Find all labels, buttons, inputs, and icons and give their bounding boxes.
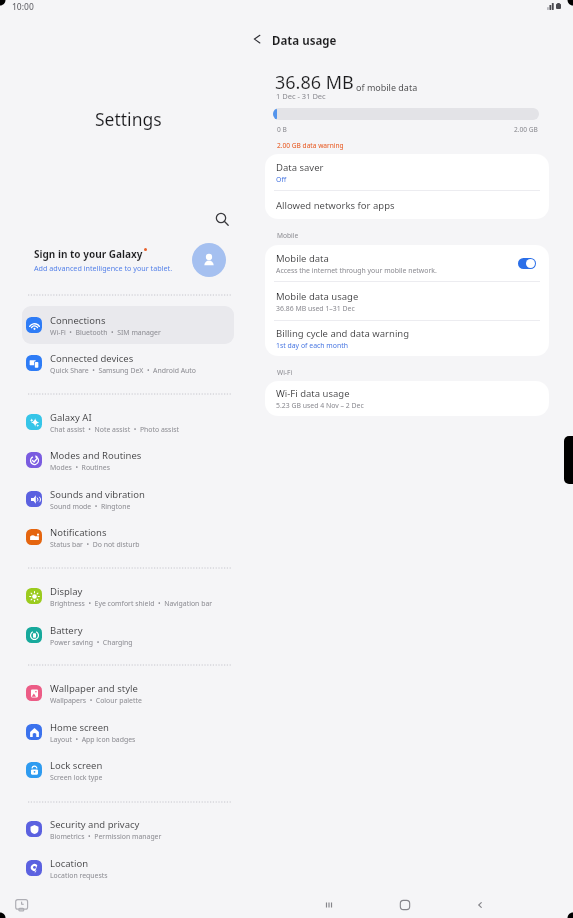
staticText: Data saver bbox=[276, 161, 324, 174]
button[interactable]: Search bbox=[215, 212, 230, 227]
staticText: 10:00 bbox=[12, 1, 34, 13]
staticText: Sound mode • Ringtone bbox=[50, 502, 131, 511]
staticText: Sounds and vibration bbox=[50, 488, 145, 501]
staticText: Modes • Routines bbox=[50, 463, 111, 472]
button[interactable]: Back bbox=[246, 28, 268, 50]
button[interactable]: Battery bbox=[22, 616, 234, 654]
staticText: Display bbox=[50, 585, 83, 598]
staticText: 1 Dec - 31 Dec bbox=[276, 91, 326, 101]
staticText: Wi-Fi bbox=[277, 368, 293, 377]
button[interactable]: Edge panel bbox=[564, 436, 573, 484]
staticText: Mobile data usage bbox=[276, 290, 359, 303]
staticText: Brightness • Eye comfort shield • Naviga… bbox=[50, 599, 213, 608]
staticText: Access the internet through your mobile … bbox=[276, 266, 437, 275]
button[interactable]: Allowed networks for apps bbox=[265, 191, 549, 219]
staticText: Location bbox=[50, 857, 89, 870]
staticText: Data usage bbox=[272, 33, 337, 49]
staticText: Galaxy AI bbox=[50, 411, 92, 424]
button[interactable]: Lock screen bbox=[22, 751, 234, 789]
staticText: Sign in to your Galaxy bbox=[34, 247, 143, 261]
staticText: Modes and Routines bbox=[50, 449, 142, 462]
staticText: Connected devices bbox=[50, 352, 134, 365]
staticText: 5.23 GB used 4 Nov – 2 Dec bbox=[276, 401, 364, 410]
staticText: 0 B bbox=[277, 125, 287, 134]
button[interactable]: Galaxy AI bbox=[22, 403, 234, 441]
staticText: Add advanced intelligence to your tablet… bbox=[34, 263, 173, 273]
staticText: Chat assist • Note assist • Photo assist bbox=[50, 425, 179, 434]
button[interactable]: Home bbox=[396, 896, 414, 914]
button[interactable]: Sounds and vibration bbox=[22, 480, 234, 518]
staticText: 2.00 GB data warning bbox=[277, 141, 344, 150]
staticText: Layout • App icon badges bbox=[50, 735, 136, 744]
button[interactable]: Recent apps bbox=[15, 898, 29, 911]
button[interactable]: Location bbox=[22, 849, 234, 887]
button[interactable]: Notifications bbox=[22, 518, 234, 556]
staticText: Home screen bbox=[50, 721, 109, 734]
staticText: Allowed networks for apps bbox=[276, 199, 395, 212]
staticText: Off bbox=[276, 175, 287, 184]
staticText: Quick Share • Samsung DeX • Android Auto bbox=[50, 366, 197, 375]
staticText: Biometrics • Permission manager bbox=[50, 832, 162, 841]
staticText: Security and privacy bbox=[50, 818, 140, 831]
staticText: Mobile bbox=[277, 231, 299, 240]
button[interactable]: Data saver bbox=[265, 154, 549, 190]
staticText: Connections bbox=[50, 314, 106, 327]
staticText: Screen lock type bbox=[50, 773, 103, 782]
staticText: 36.86 MB used 1–31 Dec bbox=[276, 304, 355, 313]
staticText: Mobile data bbox=[276, 252, 329, 265]
button[interactable]: Wi-Fi data usage bbox=[265, 381, 549, 416]
button[interactable]: Sign in to your Galaxy bbox=[0, 240, 256, 280]
button[interactable]: Recents bbox=[320, 896, 338, 914]
button[interactable]: Display bbox=[22, 577, 234, 615]
staticText: Wi-Fi • Bluetooth • SIM manager bbox=[50, 328, 161, 337]
staticText: of mobile data bbox=[356, 81, 418, 93]
button[interactable]: Billing cycle and data warning bbox=[265, 321, 549, 356]
button[interactable]: Back bbox=[471, 896, 489, 914]
button[interactable]: Home screen bbox=[22, 713, 234, 751]
staticText: Location requests bbox=[50, 871, 108, 880]
button[interactable]: Mobile data on bbox=[518, 258, 536, 269]
staticText: 2.00 GB bbox=[514, 125, 538, 134]
button[interactable]: Modes and Routines bbox=[22, 441, 234, 479]
staticText: Wallpapers • Colour palette bbox=[50, 696, 142, 705]
button[interactable]: Connected devices bbox=[22, 344, 234, 382]
staticText: Power saving • Charging bbox=[50, 638, 133, 647]
button[interactable]: Mobile data usage bbox=[265, 282, 549, 320]
staticText: Battery bbox=[50, 624, 83, 637]
staticText: Lock screen bbox=[50, 759, 103, 772]
staticText: Billing cycle and data warning bbox=[276, 327, 410, 340]
staticText: 1st day of each month bbox=[276, 341, 348, 350]
button[interactable]: Connections bbox=[22, 306, 234, 344]
staticText: Settings bbox=[95, 107, 162, 131]
staticText: Status bar • Do not disturb bbox=[50, 540, 140, 549]
button[interactable]: Security and privacy bbox=[22, 810, 234, 848]
button[interactable]: Wallpaper and style bbox=[22, 674, 234, 712]
staticText: Notifications bbox=[50, 526, 107, 539]
button[interactable]: Mobile data bbox=[265, 245, 549, 281]
staticText: Wallpaper and style bbox=[50, 682, 138, 695]
staticText: 36.86 MB bbox=[275, 70, 354, 95]
staticText: Wi-Fi data usage bbox=[276, 387, 350, 400]
